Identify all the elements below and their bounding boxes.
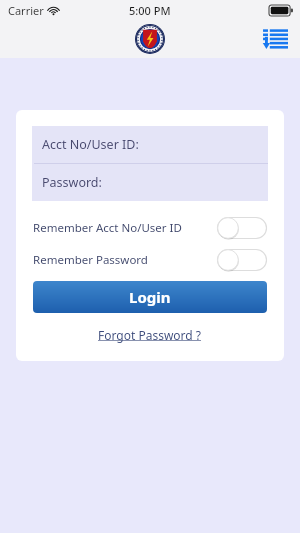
staticText: Acct No/User ID: [42,136,139,153]
staticText: 5:00 PM [129,3,171,18]
button[interactable]: Menu [258,22,292,56]
staticText: Carrier [8,3,44,18]
button[interactable]: Home [135,24,165,54]
staticText: Login [129,287,171,307]
staticText: Forgot Password ? [98,327,202,343]
button[interactable]: Login [33,281,267,313]
button[interactable]: Password: [32,164,268,201]
button[interactable]: Acct No/User ID: [32,126,268,163]
button[interactable]: Remember Acct No/User ID [33,217,267,239]
button[interactable]: Remember Password [33,249,267,271]
staticText: Remember Acct No/User ID [33,220,217,236]
button[interactable]: Toggle [217,217,267,239]
staticText: Password: [42,174,102,191]
staticText: Remember Password [33,252,217,268]
button[interactable]: Forgot Password ? [94,325,206,345]
button[interactable]: Toggle [217,249,267,271]
